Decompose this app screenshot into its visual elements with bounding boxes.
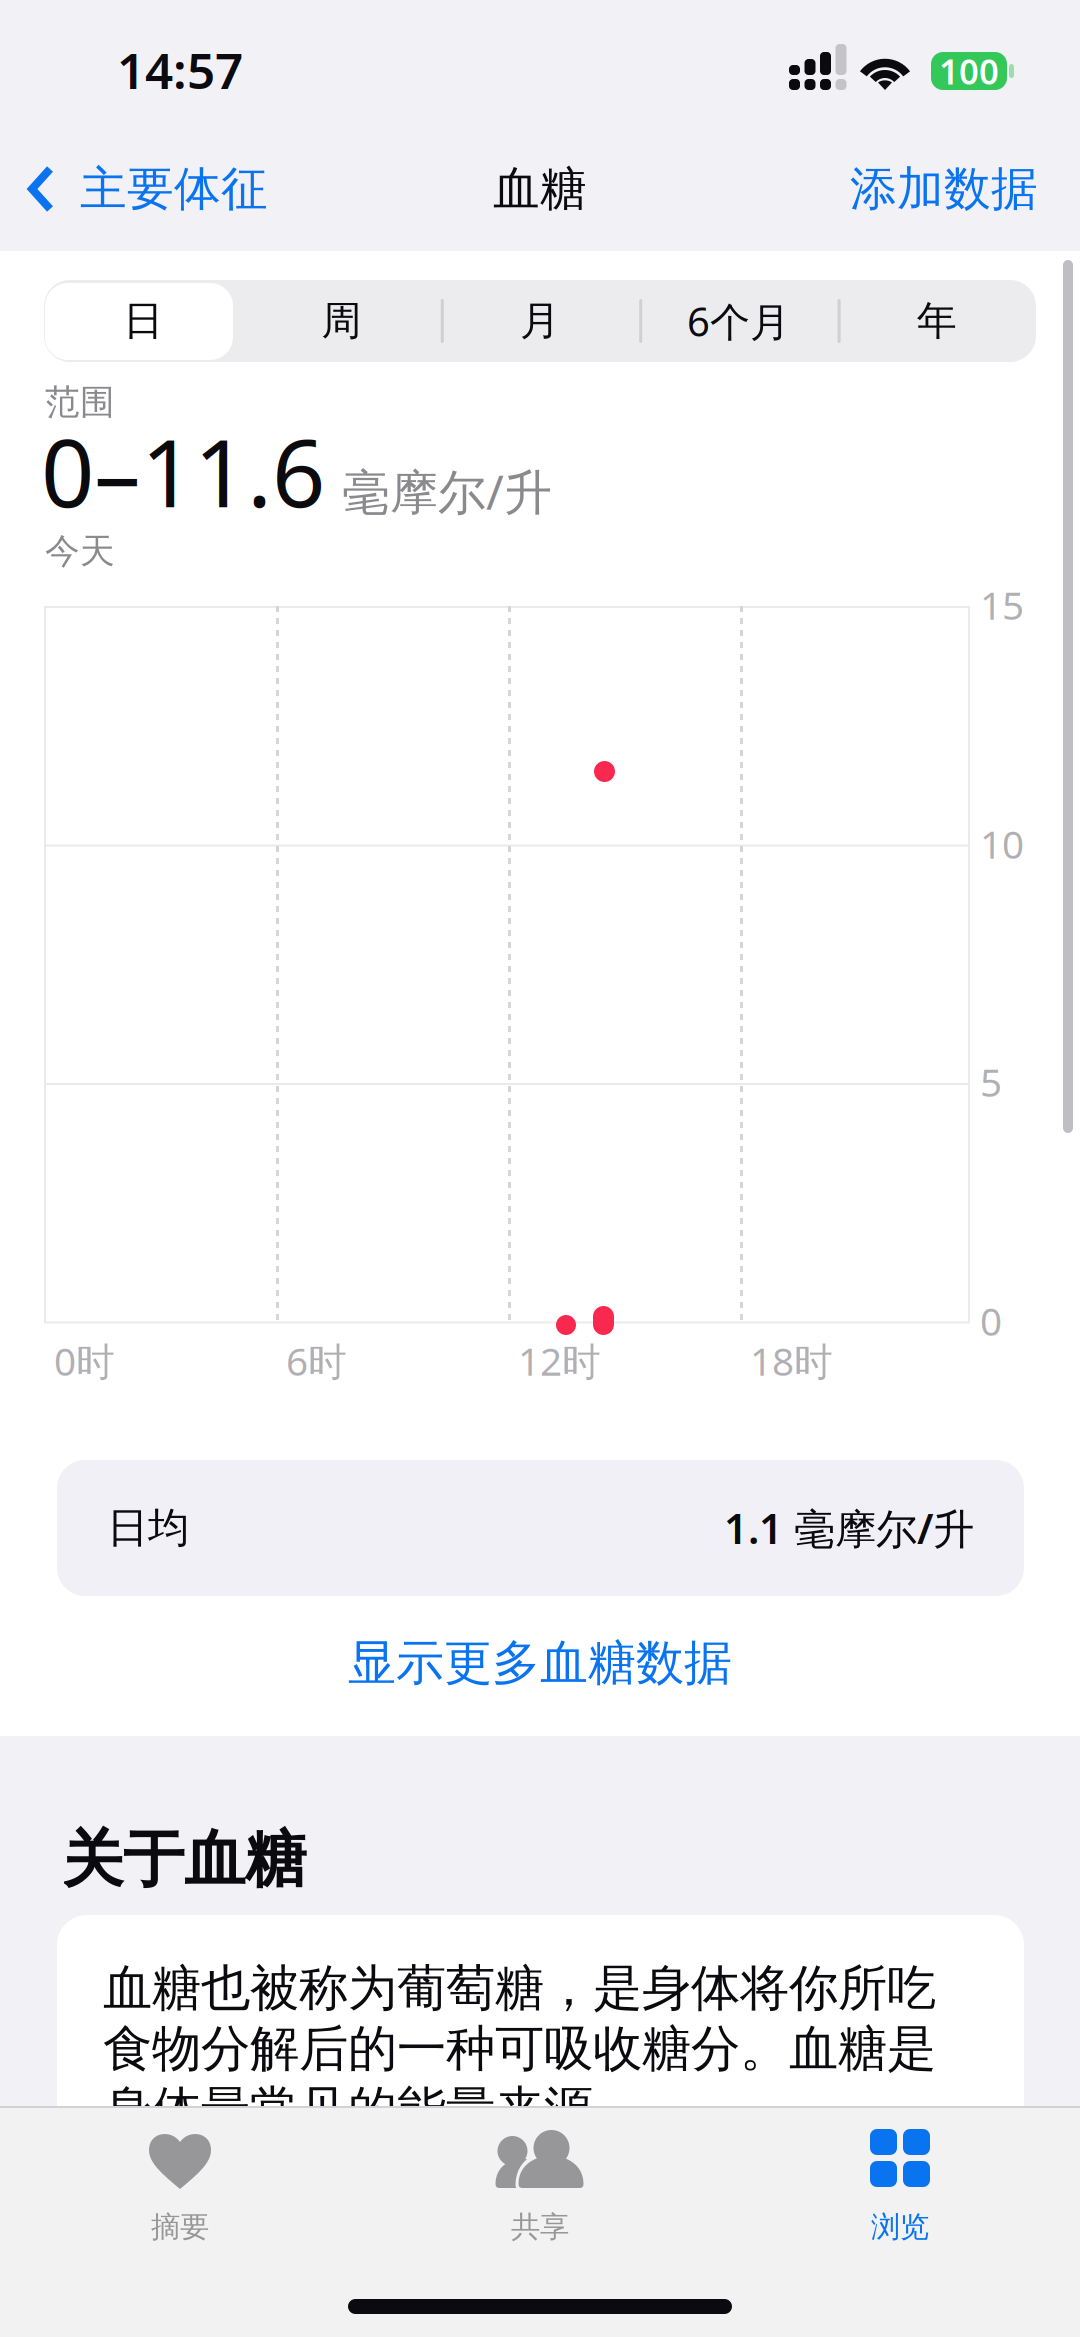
staticText: 6个月 — [687, 294, 790, 347]
staticText: 添加数据 — [850, 160, 1038, 218]
button[interactable]: 浏览 — [720, 2129, 1080, 2259]
staticText: 共享 — [511, 2209, 569, 2245]
staticText: 14:57 — [117, 37, 243, 102]
staticText: 毫摩尔/升 — [342, 459, 552, 523]
staticText: 日 — [123, 296, 163, 345]
staticText: 摘要 — [151, 2209, 209, 2245]
staticText: 日均 — [107, 1503, 189, 1553]
button[interactable]: 周 — [242, 280, 441, 362]
staticText: 0时 — [54, 1335, 115, 1386]
button[interactable]: 显示更多血糖数据 — [0, 1608, 1080, 1718]
staticText: 0 — [980, 1295, 1002, 1346]
staticText: 主要体征 — [80, 160, 268, 218]
staticText: 10 — [980, 818, 1024, 869]
button[interactable]: 主要体征 — [26, 0, 346, 110]
staticText: 周 — [322, 296, 362, 345]
staticText: 18时 — [750, 1335, 833, 1386]
staticText: 1.1 毫摩尔/升 — [724, 1501, 974, 1555]
staticText: 100 — [939, 48, 999, 94]
staticText: 0–11.6 — [41, 409, 325, 533]
staticText: 范围 — [45, 381, 115, 424]
staticText: 浏览 — [871, 2209, 929, 2245]
staticText: 显示更多血糖数据 — [348, 1633, 732, 1692]
button[interactable]: 日 — [44, 280, 242, 362]
button[interactable]: 共享 — [360, 2129, 720, 2259]
staticText: 血糖也被称为葡萄糖，是身体将你所吃食物分解后的一种可吸收糖分。血糖是身体最常见的… — [103, 1958, 936, 2140]
button[interactable]: 摘要 — [0, 2129, 360, 2259]
button[interactable]: 添加数据 — [738, 0, 1038, 110]
staticText: 关于血糖 — [62, 1822, 306, 1897]
staticText: 6时 — [286, 1335, 347, 1386]
staticText: 血糖 — [493, 160, 587, 218]
staticText: 今天 — [45, 530, 115, 573]
button[interactable]: 月 — [441, 280, 639, 362]
button[interactable]: 年 — [838, 280, 1036, 362]
staticText: 月 — [520, 296, 560, 345]
staticText: 12时 — [518, 1335, 601, 1386]
staticText: 5 — [980, 1056, 1002, 1107]
staticText: 年 — [917, 296, 957, 345]
staticText: 15 — [980, 579, 1024, 630]
button[interactable]: 6个月 — [639, 280, 838, 362]
